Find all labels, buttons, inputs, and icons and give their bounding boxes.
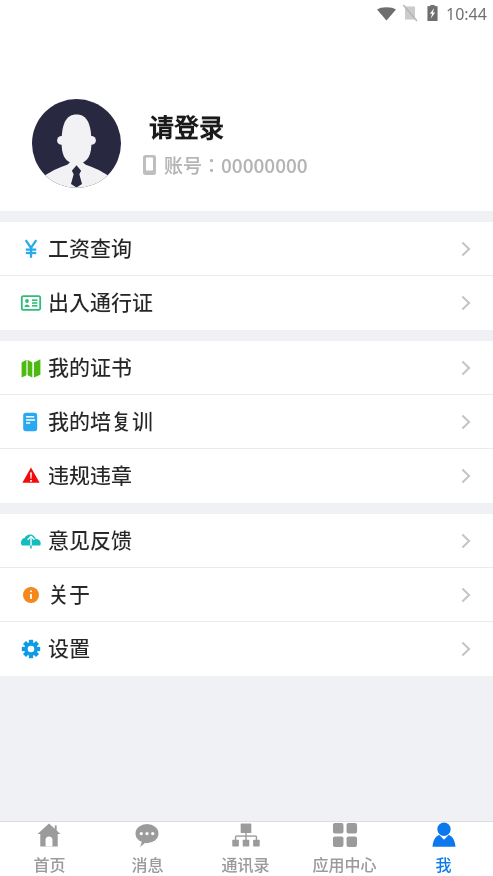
button[interactable]: 首页	[0, 823, 98, 875]
button[interactable]: 我	[394, 823, 493, 875]
staticText: 我的培复训	[48, 405, 153, 435]
button[interactable]: 工资查询	[0, 222, 493, 276]
staticText: 意见反馈	[48, 524, 132, 554]
button[interactable]: 意见反馈	[0, 514, 493, 568]
staticText: 消息	[131, 852, 164, 875]
staticText: 请登录	[149, 108, 225, 144]
staticText: 首页	[33, 852, 66, 875]
button[interactable]: 我的证书	[0, 341, 493, 395]
staticText: 我的证书	[48, 351, 132, 381]
button[interactable]: 通讯录	[196, 823, 295, 875]
button[interactable]: 出入通行证	[0, 276, 493, 330]
staticText: 账号：00000000	[164, 151, 308, 179]
staticText: 通讯录	[221, 852, 270, 875]
staticText: 违规违章	[48, 459, 132, 489]
button[interactable]: 违规违章	[0, 449, 493, 503]
staticText: 出入通行证	[48, 286, 153, 316]
staticText: 工资查询	[48, 232, 132, 262]
staticText: 我	[435, 852, 452, 875]
staticText: 应用中心	[312, 852, 377, 875]
button[interactable]: 我的培复训	[0, 395, 493, 449]
button[interactable]: 关于	[0, 568, 493, 622]
button[interactable]: 消息	[98, 823, 196, 875]
staticText: 关于	[48, 578, 90, 608]
staticText: 设置	[48, 632, 90, 662]
staticText: 10:44	[446, 3, 487, 25]
button[interactable]: 应用中心	[295, 823, 394, 875]
button[interactable]: 设置	[0, 622, 493, 676]
button[interactable]: 请登录	[0, 32, 493, 211]
